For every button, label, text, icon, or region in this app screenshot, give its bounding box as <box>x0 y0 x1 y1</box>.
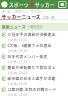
staticText: 9/4(木) 15:08 <box>8 82 28 86</box>
button[interactable]: 記事一覧 <box>43 15 55 20</box>
button[interactable]: Menu <box>58 1 66 7</box>
button[interactable]: J1第29節 注目の対戦カード <box>0 86 68 96</box>
staticText: ホーム <box>2 9 11 14</box>
button[interactable]: 三冠王手の浦和が決勝進出 <box>0 31 68 42</box>
staticText: サッカーニュース <box>2 13 41 20</box>
staticText: スポーツ <box>15 9 27 14</box>
staticText: サッカー <box>31 9 43 14</box>
staticText: 9/4(木) 17:45 <box>8 60 28 64</box>
staticText: 記事一覧 <box>43 15 55 20</box>
button[interactable]: 欧州組の日本人選手が活躍 <box>0 75 68 86</box>
staticText: 鹿島が逆転勝ちで首位浮上 <box>8 65 56 70</box>
staticText: 9/4(木) 14:00 <box>8 93 28 96</box>
button[interactable]: 鹿島が逆転勝ちで首位浮上 <box>0 64 68 75</box>
staticText: 9/4(木) 16:20 <box>8 71 28 75</box>
staticText: 9/4(木) 19:02 <box>8 38 28 42</box>
staticText: 9/4(木) 18:30 <box>8 49 28 53</box>
button[interactable]: ホーム <box>2 9 11 14</box>
staticText: 欧州組の日本人選手が活躍 <box>8 76 56 81</box>
staticText: 三冠王手の浦和が決勝進出 <box>8 32 56 37</box>
staticText: > <box>12 9 14 14</box>
staticText: > <box>28 9 30 14</box>
staticText: J1第29節 注目の対戦カード <box>8 87 57 92</box>
staticText: 一覧を見る <box>27 25 42 29</box>
button[interactable]: スポーツ <box>15 9 27 14</box>
staticText: 日本代表メンバー発表 <box>8 54 48 59</box>
button[interactable]: 一覧を見る <box>27 25 42 29</box>
staticText: C大阪、3連勝で上位進出 <box>8 43 52 48</box>
staticText: サッカー <box>35 1 55 8</box>
staticText: 最新ニュース <box>2 24 26 30</box>
staticText: スポーツ <box>9 1 29 8</box>
button[interactable]: C大阪、3連勝で上位進出 <box>0 42 68 53</box>
button[interactable]: 日本代表メンバー発表 <box>0 53 68 64</box>
